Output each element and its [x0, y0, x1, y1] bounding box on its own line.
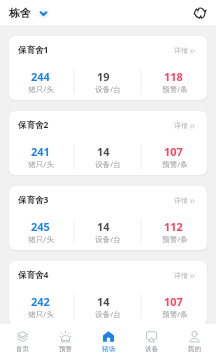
staticText: 14: [97, 144, 110, 159]
staticText: 245: [31, 219, 50, 234]
button[interactable]: 设备: [130, 324, 173, 360]
staticText: 首页: [16, 345, 29, 353]
button[interactable]: 猪场: [87, 324, 130, 360]
staticText: 设备/台: [95, 234, 121, 244]
staticText: 猪只/头: [28, 159, 54, 169]
staticText: 设备/台: [95, 309, 121, 319]
staticText: 19: [97, 69, 110, 84]
staticText: 猪场: [102, 345, 115, 353]
staticText: 241: [31, 144, 50, 159]
button[interactable]: 保育舍3: [9, 186, 207, 250]
staticText: 设备: [145, 345, 158, 353]
staticText: 我的: [188, 345, 201, 353]
staticText: 详情: [174, 271, 188, 280]
staticText: 设备/台: [95, 84, 121, 94]
button[interactable]: 详情: [174, 46, 195, 55]
staticText: 保育舍2: [18, 119, 49, 131]
staticText: 栋舍: [9, 6, 31, 20]
staticText: 猪只/头: [28, 234, 54, 244]
staticText: 详情: [174, 196, 188, 205]
staticText: 14: [97, 294, 110, 309]
staticText: 112: [164, 219, 183, 234]
button[interactable]: 详情: [174, 196, 195, 205]
staticText: 猪只/头: [28, 84, 54, 94]
staticText: 保育舍3: [18, 194, 49, 206]
staticText: 详情: [174, 121, 188, 130]
staticText: 107: [164, 294, 183, 309]
button[interactable]: 保育舍4: [9, 261, 207, 324]
button[interactable]: 详情: [174, 121, 195, 130]
staticText: 14: [97, 219, 110, 234]
staticText: 预警/条: [162, 84, 188, 94]
button[interactable]: 栋舍: [9, 4, 49, 22]
button[interactable]: 保育舍2: [9, 111, 207, 175]
button[interactable]: 预警: [44, 324, 87, 360]
staticText: 预警/条: [162, 309, 188, 319]
staticText: 242: [31, 294, 50, 309]
staticText: 详情: [174, 46, 188, 55]
button[interactable]: Pigs: [192, 5, 208, 21]
staticText: 107: [164, 144, 183, 159]
staticText: 猪只/头: [28, 309, 54, 319]
staticText: 预警: [59, 345, 72, 353]
button[interactable]: 保育舍1: [9, 36, 207, 100]
button[interactable]: 首页: [0, 324, 44, 360]
staticText: 保育舍4: [18, 269, 49, 281]
staticText: 预警/条: [162, 159, 188, 169]
button[interactable]: 我的: [173, 324, 216, 360]
staticText: 设备/台: [95, 159, 121, 169]
staticText: 保育舍1: [18, 44, 49, 56]
staticText: 预警/条: [162, 234, 188, 244]
button[interactable]: 详情: [174, 271, 195, 280]
staticText: 244: [31, 69, 50, 84]
staticText: 118: [164, 69, 183, 84]
